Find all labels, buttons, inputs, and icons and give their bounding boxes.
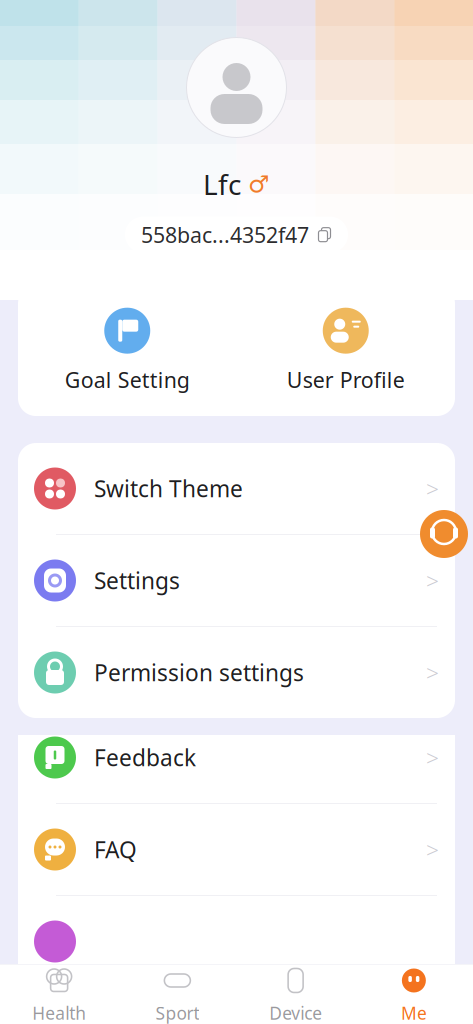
staticText: > [426, 657, 439, 688]
staticText: Settings [94, 565, 180, 596]
staticText: Me [401, 1001, 427, 1024]
button[interactable]: Me [355, 957, 473, 1024]
staticText: ♂ [248, 170, 270, 198]
staticText: Device [269, 1001, 322, 1024]
staticText: Switch Theme [94, 473, 243, 504]
staticText: Goal Setting [65, 366, 190, 394]
button[interactable]: Health [0, 957, 118, 1024]
button[interactable]: 558bac...4352f47 [125, 217, 348, 253]
button[interactable]: Device [236, 957, 355, 1024]
button[interactable]: Permission settings [18, 627, 455, 718]
button[interactable]: User Profile [236, 308, 455, 394]
button[interactable]: FAQ [18, 804, 455, 896]
button[interactable]: Feedback [18, 712, 455, 804]
staticText: > [426, 473, 439, 504]
button[interactable]: Sport [118, 957, 236, 1024]
staticText: > [426, 742, 439, 773]
staticText: Feedback [94, 742, 196, 773]
staticText: 558bac...4352f47 [141, 220, 309, 249]
button[interactable]: Switch Theme [18, 443, 455, 535]
staticText: Permission settings [94, 657, 304, 688]
button[interactable]: Settings [18, 535, 455, 627]
staticText: Sport [155, 1001, 199, 1024]
staticText: FAQ [94, 834, 137, 865]
staticText: > [426, 834, 439, 865]
staticText: > [426, 565, 439, 596]
button[interactable]: Goal Setting [18, 308, 236, 394]
button[interactable]: Customer support [420, 510, 468, 558]
staticText: User Profile [287, 366, 405, 394]
button[interactable]: Profile photo [186, 31, 286, 143]
staticText: Health [32, 1001, 86, 1024]
staticText: Lfc [203, 165, 241, 203]
